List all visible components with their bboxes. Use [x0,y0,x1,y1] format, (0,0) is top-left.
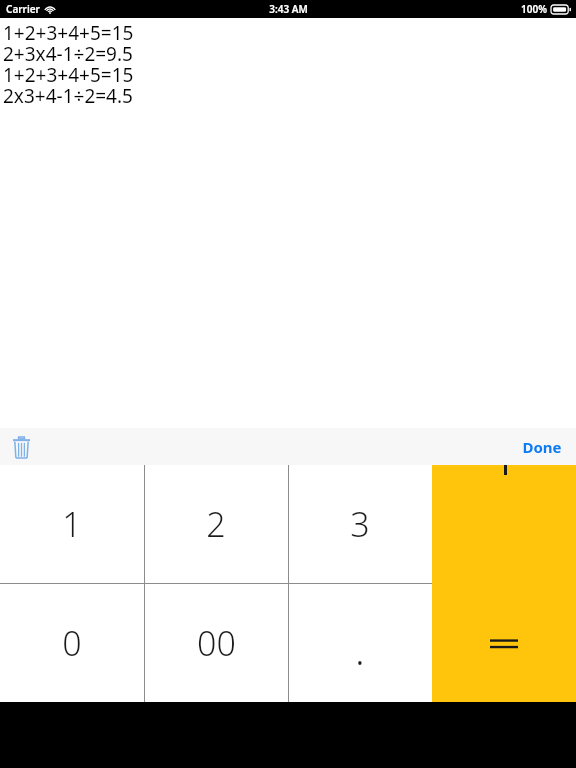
button[interactable]: Done [508,428,576,465]
staticText: 1 [62,501,82,547]
staticText: 00 [197,620,236,666]
staticText: 1+2+3+4+5=15 [3,62,134,83]
button[interactable]: . [288,584,432,702]
staticText: 2 [206,501,226,547]
button[interactable]: Operator [432,465,576,583]
button[interactable]: 2 [144,465,288,583]
button[interactable]: 0 [0,584,144,702]
staticText: 3:43 AM [269,2,308,16]
staticText: 2+3x4-1÷2=9.5 [3,41,133,62]
staticText: 1+2+3+4+5=15 [3,20,134,41]
button[interactable] [432,584,576,702]
button[interactable]: 00 [144,584,288,702]
staticText: 100% [521,2,547,16]
staticText: Done [522,437,562,457]
staticText: 2x3+4-1÷2=4.5 [3,83,133,104]
staticText: 0 [62,620,82,666]
staticText: . [355,622,365,676]
button[interactable]: 1 [0,465,144,583]
staticText: 3 [350,501,370,547]
button[interactable]: 3 [288,465,432,583]
button[interactable]: Clear history [6,432,36,462]
staticText: Carrier [6,2,40,16]
